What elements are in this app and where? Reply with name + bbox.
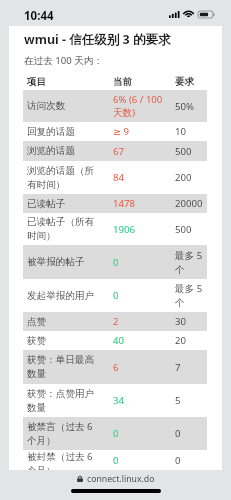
staticText: 最多 5 个 (175, 282, 205, 309)
staticText: 2 (113, 315, 169, 328)
button[interactable]: 浏览的话题 (23, 141, 207, 161)
button[interactable]: 回复的话题 (23, 122, 207, 141)
staticText: 84 (113, 171, 169, 184)
button[interactable]: 已读帖子 (23, 194, 207, 213)
staticText: 1478 (113, 197, 169, 210)
staticText: 34 (113, 394, 169, 407)
staticText: 当前 (113, 76, 171, 88)
staticText: 20 (175, 334, 186, 347)
staticText: 已读帖子（所有时间） (27, 216, 101, 242)
staticText: wmui - 信任级别 3 的要求 (24, 31, 171, 48)
button[interactable]: 获赞 (23, 331, 207, 350)
staticText: 0 (175, 454, 181, 467)
button[interactable]: 访问次数 (23, 90, 207, 122)
staticText: 项目 (27, 76, 109, 88)
staticText: 20000 (175, 197, 203, 210)
staticText: 500 (175, 223, 192, 236)
staticText: 被禁言（过去 6 个月） (27, 420, 101, 447)
staticText: 被封禁（过去 6 个月） (27, 450, 101, 470)
staticText: 获赞：点赞用户数量 (27, 388, 101, 414)
staticText: 在过去 100 天内： (24, 54, 104, 67)
staticText: 浏览的话题（所有时间） (27, 165, 101, 191)
staticText: 获赞：单日最高数量 (27, 354, 101, 380)
button[interactable]: 发起举报的用户 (23, 279, 207, 312)
staticText: 6 (113, 361, 169, 374)
staticText: 点赞 (27, 316, 101, 328)
button[interactable]: 获赞：单日最高数量 (23, 350, 207, 384)
staticText: 30 (175, 315, 186, 328)
staticText: 0 (175, 427, 181, 440)
other: Secure connection (77, 475, 83, 483)
staticText: 7 (175, 361, 181, 374)
staticText: 已读帖子 (27, 198, 101, 210)
staticText: 40 (113, 334, 169, 347)
staticText: connect.linux.do (87, 473, 155, 485)
staticText: 浏览的话题 (27, 145, 101, 157)
staticText: 200 (175, 171, 192, 184)
staticText: ≥ 9 (113, 125, 169, 138)
staticText: 回复的话题 (27, 126, 101, 138)
staticText: 50% (175, 100, 194, 113)
staticText: 6% (6 / 100 天数) (113, 93, 169, 119)
staticText: 0 (113, 289, 169, 302)
staticText: 被举报的帖子 (27, 256, 101, 268)
staticText: 5 (175, 394, 181, 407)
staticText: 0 (113, 427, 169, 440)
staticText: 访问次数 (27, 100, 101, 112)
staticText: 最多 5 个 (175, 249, 205, 276)
button[interactable]: 已读帖子（所有时间） (23, 213, 207, 245)
button[interactable]: 获赞：点赞用户数量 (23, 384, 207, 417)
button[interactable]: Secure connection (77, 473, 155, 485)
staticText: 要求 (175, 76, 195, 88)
button[interactable]: 点赞 (23, 312, 207, 331)
staticText: 1906 (113, 223, 169, 236)
staticText: 0 (113, 256, 169, 269)
staticText: 10 (175, 125, 186, 138)
button[interactable]: 被禁言（过去 6 个月） (23, 417, 207, 450)
button[interactable]: 被封禁（过去 6 个月） (23, 450, 207, 470)
button[interactable]: 被举报的帖子 (23, 245, 207, 279)
staticText: 获赞 (27, 335, 101, 347)
staticText: 发起举报的用户 (27, 290, 101, 302)
button[interactable]: 浏览的话题（所有时间） (23, 161, 207, 194)
staticText: 10:44 (24, 8, 54, 24)
staticText: 0 (113, 454, 169, 467)
staticText: 67 (113, 145, 169, 158)
staticText: 500 (175, 145, 192, 158)
